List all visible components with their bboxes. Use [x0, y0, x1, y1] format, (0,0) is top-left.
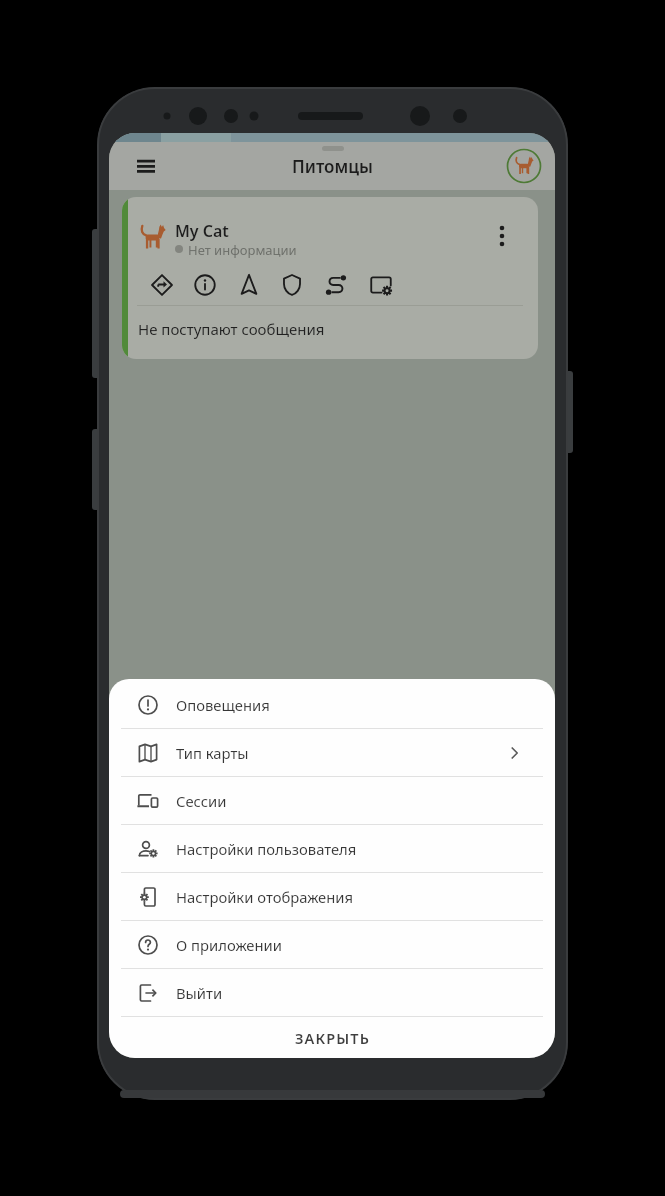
- button[interactable]: Настройки пользователя: [109, 825, 555, 872]
- button[interactable]: О приложении: [109, 921, 555, 968]
- staticText: Сессии: [176, 791, 227, 811]
- staticText: Настройки пользователя: [176, 839, 357, 859]
- button[interactable]: [134, 154, 158, 178]
- button[interactable]: [236, 272, 262, 298]
- button[interactable]: [507, 149, 541, 183]
- button[interactable]: ЗАКРЫТЬ: [109, 1017, 555, 1058]
- staticText: My Cat: [175, 220, 229, 242]
- button[interactable]: Тип карты: [109, 729, 555, 776]
- button[interactable]: Настройки отображения: [109, 873, 555, 920]
- button[interactable]: [490, 224, 514, 248]
- button[interactable]: Выйти: [109, 969, 555, 1016]
- button[interactable]: Сессии: [109, 777, 555, 824]
- staticText: Настройки отображения: [176, 887, 354, 907]
- staticText: Не поступают сообщения: [138, 319, 325, 339]
- staticText: Питомцы: [292, 155, 373, 178]
- staticText: Тип карты: [176, 743, 249, 763]
- button[interactable]: [323, 272, 349, 298]
- button[interactable]: [192, 272, 218, 298]
- button[interactable]: [368, 272, 394, 298]
- button[interactable]: [279, 272, 305, 298]
- button[interactable]: [149, 272, 175, 298]
- button[interactable]: Оповещения: [109, 681, 555, 728]
- staticText: Оповещения: [176, 695, 270, 715]
- button[interactable]: My Cat: [122, 197, 538, 359]
- staticText: ЗАКРЫТЬ: [295, 1028, 370, 1048]
- staticText: О приложении: [176, 935, 282, 955]
- staticText: Выйти: [176, 983, 223, 1003]
- staticText: Нет информации: [188, 241, 297, 259]
